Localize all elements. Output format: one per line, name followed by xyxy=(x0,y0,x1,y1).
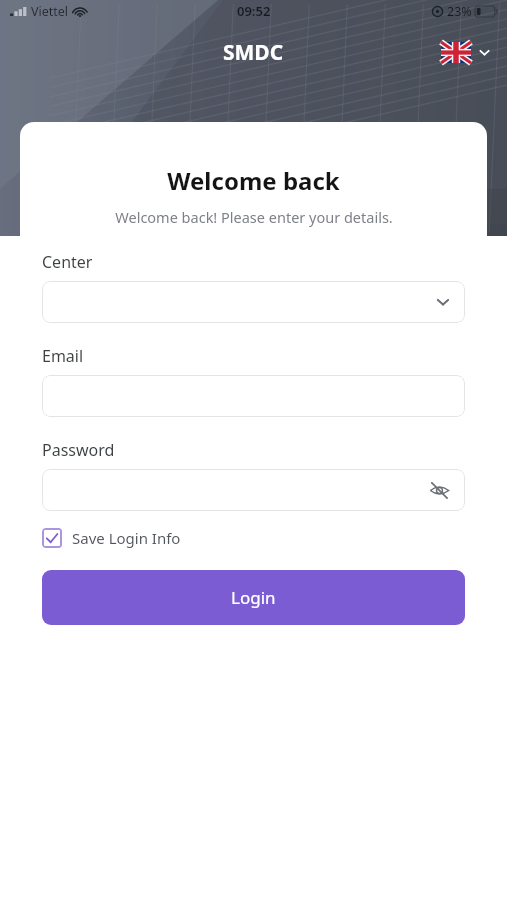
staticText: Password xyxy=(42,439,465,461)
staticText: Welcome back! Please enter your details. xyxy=(115,207,393,227)
button[interactable]: Show password xyxy=(42,469,465,511)
button[interactable] xyxy=(42,281,465,323)
button[interactable]: Save Login Info xyxy=(42,528,465,548)
staticText: Welcome back xyxy=(167,164,340,197)
button[interactable]: Change language xyxy=(437,38,495,67)
staticText: 23% xyxy=(447,3,472,20)
staticText: Email xyxy=(42,345,465,367)
staticText: Center xyxy=(42,251,465,273)
staticText: SMDC xyxy=(223,38,284,67)
staticText: Login xyxy=(231,586,276,609)
button[interactable]: Login xyxy=(42,570,465,625)
staticText: Viettel xyxy=(31,3,69,20)
button[interactable] xyxy=(42,375,465,417)
staticText: Save Login Info xyxy=(72,528,181,548)
button[interactable]: Show password xyxy=(428,479,451,502)
staticText: 09:52 xyxy=(237,2,271,20)
